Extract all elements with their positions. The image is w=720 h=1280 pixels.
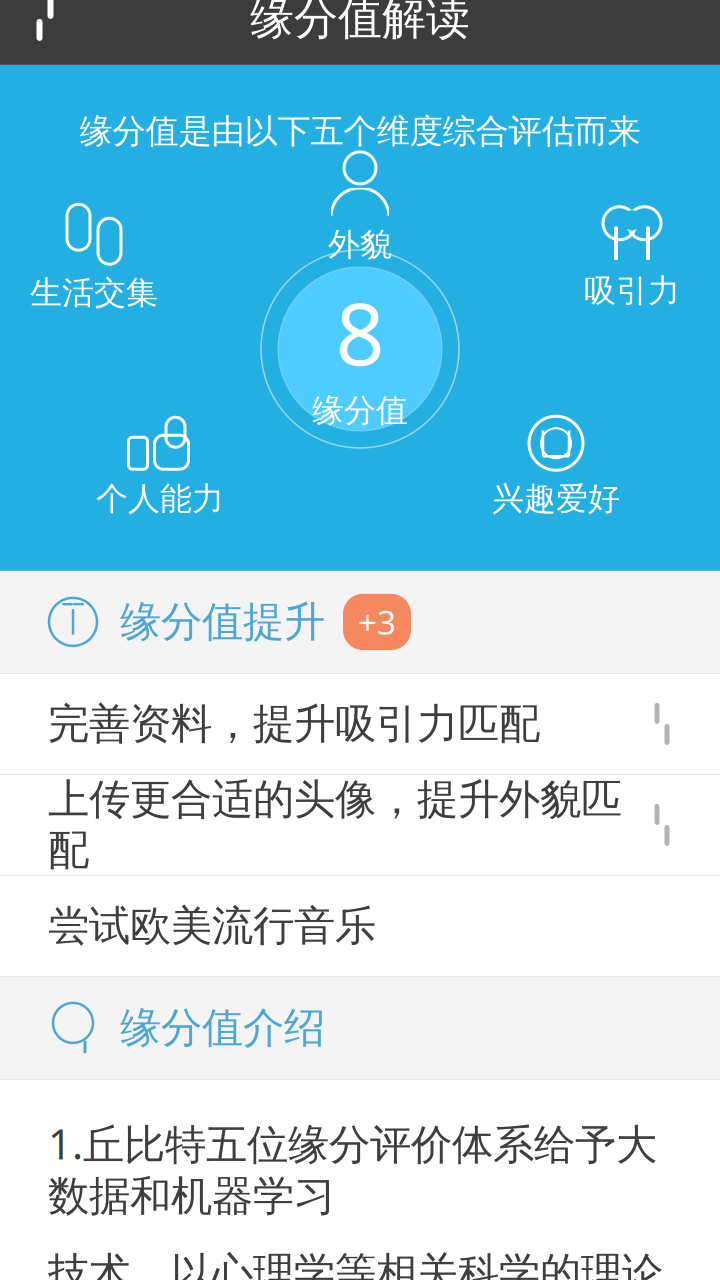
button[interactable]: 上传更合适的头像，提升外貌匹配 [0, 775, 720, 875]
staticText: 缘分值 [312, 391, 408, 430]
staticText: 8 [335, 276, 384, 389]
staticText: 外貌 [328, 225, 392, 264]
staticText: 缘分值是由以下五个维度综合评估而来 [79, 111, 640, 152]
staticText: 1.丘比特五位缘分评价体系给予大数据和机器学习 [48, 1116, 657, 1222]
staticText: 缘分值提升 [120, 596, 325, 647]
button[interactable]: 完善资料，提升吸引力匹配 [0, 674, 720, 774]
button[interactable]: 尝试欧美流行音乐 [0, 876, 720, 976]
staticText: 完善资料，提升吸引力匹配 [48, 698, 540, 749]
staticText: 上传更合适的头像，提升外貌匹配 [48, 774, 622, 876]
staticText: 个人能力 [96, 479, 224, 519]
staticText: 技术，以心理学等相关科学的理论为指导，通过上 [48, 1248, 663, 1280]
staticText: 生活交集 [30, 273, 158, 313]
staticText: 吸引力 [584, 271, 680, 311]
staticText: +3 [358, 600, 396, 644]
staticText: 兴趣爱好 [492, 479, 620, 519]
staticText: 缘分值解读 [250, 0, 470, 46]
staticText: 缘分值介绍 [120, 1002, 325, 1053]
button[interactable]: Back [0, 0, 92, 65]
staticText: 尝试欧美流行音乐 [48, 900, 376, 951]
